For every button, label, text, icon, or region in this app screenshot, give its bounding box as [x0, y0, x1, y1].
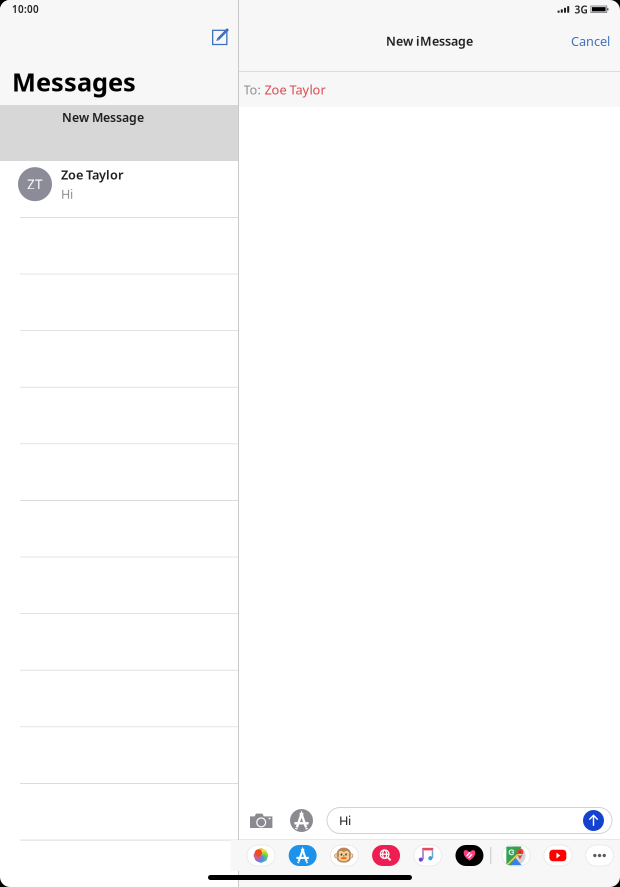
staticText: Zoe Taylor: [264, 81, 325, 98]
button[interactable]: App 3: [365, 845, 407, 866]
button[interactable]: App 8: [579, 845, 620, 866]
button[interactable]: App 6: [495, 845, 537, 866]
button[interactable]: App 2: [323, 845, 365, 866]
button[interactable]: ZT: [0, 161, 238, 218]
staticText: 🐵: [333, 845, 355, 866]
button[interactable]: [0, 784, 238, 841]
button[interactable]: App 5: [449, 845, 490, 866]
staticText: Hi: [339, 812, 351, 829]
staticText: 10:00: [12, 2, 39, 16]
button[interactable]: [0, 727, 238, 784]
button[interactable]: App 4: [407, 845, 449, 866]
staticText: Zoe Taylor: [61, 166, 123, 183]
staticText: To:: [243, 81, 260, 98]
button[interactable]: Compose: [209, 24, 233, 48]
button[interactable]: Apps: [288, 807, 315, 834]
button[interactable]: Cancel: [567, 28, 614, 54]
button[interactable]: New Message: [0, 105, 238, 161]
staticText: Hi: [61, 185, 73, 202]
button[interactable]: [0, 558, 238, 614]
staticText: New iMessage: [386, 33, 473, 49]
button[interactable]: Send: [583, 810, 604, 831]
button[interactable]: Camera: [246, 808, 277, 833]
staticText: 3G: [574, 3, 587, 16]
button[interactable]: App 1: [282, 845, 323, 866]
staticText: ZT: [27, 175, 43, 193]
button[interactable]: [0, 275, 238, 331]
staticText: Cancel: [571, 32, 610, 50]
button[interactable]: [0, 444, 238, 501]
button[interactable]: App 0: [240, 845, 282, 866]
staticText: Messages: [12, 64, 136, 99]
staticText: New Message: [62, 109, 144, 126]
button[interactable]: App 7: [537, 845, 579, 866]
